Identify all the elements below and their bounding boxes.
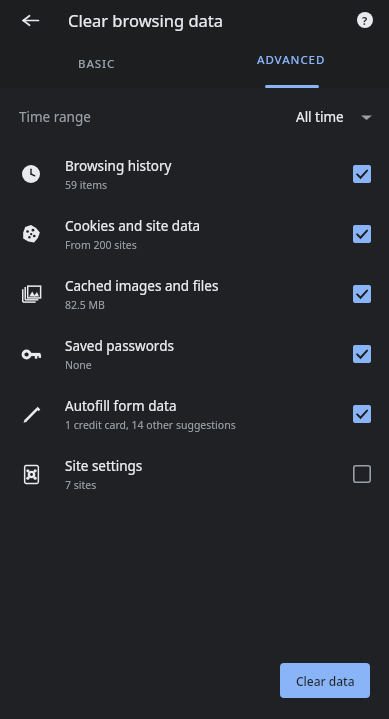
staticText: Cookies and site data xyxy=(65,217,201,235)
staticText: ? xyxy=(362,13,368,28)
button[interactable]: Cached images and files xyxy=(0,264,389,324)
staticText: Saved passwords xyxy=(65,337,174,355)
button[interactable]: Back xyxy=(13,3,47,37)
staticText: All time xyxy=(296,108,344,126)
button[interactable]: Cookies and site data xyxy=(0,204,389,264)
staticText: 82.5 MB xyxy=(65,298,105,312)
staticText: Clear data xyxy=(296,673,355,689)
button[interactable]: Autofill form data xyxy=(0,384,389,444)
staticText: Time range xyxy=(19,108,91,126)
staticText: Autofill form data xyxy=(65,397,177,415)
button[interactable]: Site settings xyxy=(0,444,389,504)
staticText: ADVANCED xyxy=(257,52,326,68)
staticText: 1 credit card, 14 other suggestions xyxy=(65,418,236,432)
button[interactable]: Browsing history xyxy=(0,144,389,204)
staticText: Browsing history xyxy=(65,157,172,175)
button[interactable]: ADVANCED xyxy=(194,40,389,88)
button[interactable]: Help xyxy=(348,3,382,37)
staticText: Cached images and files xyxy=(65,277,219,295)
staticText: Clear browsing data xyxy=(68,9,224,31)
staticText: BASIC xyxy=(78,56,116,72)
button[interactable]: BASIC xyxy=(0,40,194,88)
button[interactable]: Time range xyxy=(0,100,389,134)
button[interactable]: Saved passwords xyxy=(0,324,389,384)
staticText: 7 sites xyxy=(65,478,97,492)
staticText: From 200 sites xyxy=(65,238,137,252)
button[interactable]: Clear data xyxy=(280,663,370,698)
staticText: Site settings xyxy=(65,457,143,475)
staticText: None xyxy=(65,358,92,372)
staticText: 59 items xyxy=(65,178,108,192)
